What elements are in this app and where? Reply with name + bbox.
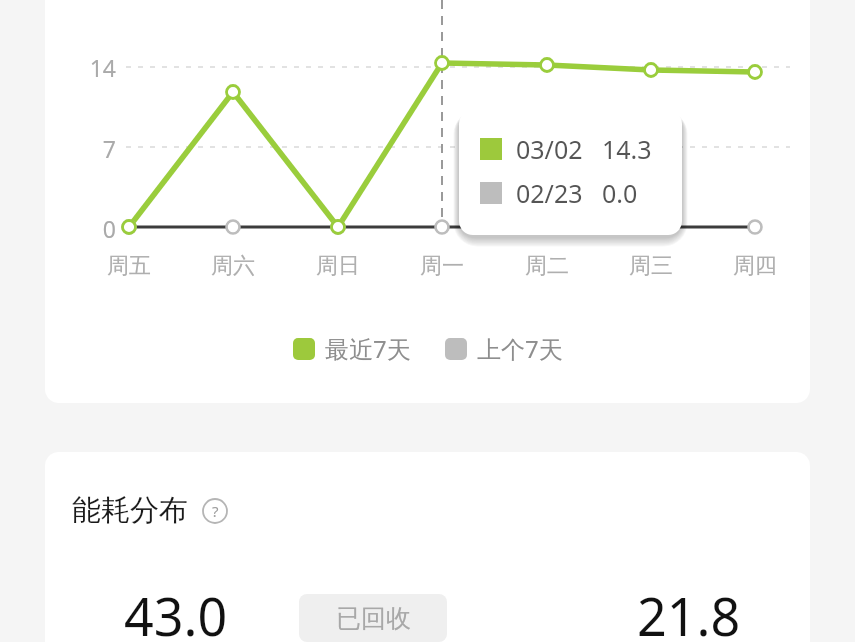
staticText: 已回收 xyxy=(336,603,411,634)
staticText: 上个7天 xyxy=(477,332,563,365)
staticText: 周日 xyxy=(316,252,360,280)
button[interactable]: 已回收 xyxy=(299,594,447,642)
button[interactable]: 能耗分布 xyxy=(72,492,228,529)
staticText: ? xyxy=(212,501,219,521)
button[interactable]: 最近7天 xyxy=(293,332,411,365)
staticText: 03/02 xyxy=(516,132,583,166)
staticText: 43.0 xyxy=(124,580,228,642)
staticText: 周四 xyxy=(733,252,777,280)
staticText: 周一 xyxy=(420,252,464,280)
staticText: 能耗分布 xyxy=(72,492,188,529)
button[interactable]: Help xyxy=(202,498,228,524)
staticText: 0 xyxy=(102,213,116,244)
staticText: 周六 xyxy=(211,252,255,280)
staticText: 最近7天 xyxy=(325,332,411,365)
button[interactable]: 上个7天 xyxy=(445,332,563,365)
staticText: 14.3 xyxy=(602,132,652,166)
staticText: 周二 xyxy=(525,252,569,280)
staticText: 周三 xyxy=(629,252,673,280)
staticText: 02/23 xyxy=(516,176,583,210)
staticText: 0.0 xyxy=(602,176,638,210)
staticText: 7 xyxy=(102,133,116,164)
staticText: 21.8 xyxy=(637,580,741,642)
staticText: 14 xyxy=(89,52,116,83)
staticText: 周五 xyxy=(107,252,151,280)
